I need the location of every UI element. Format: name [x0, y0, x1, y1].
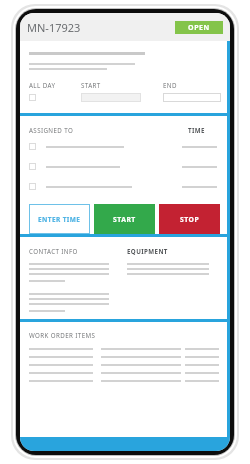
- staticText: START: [81, 81, 101, 89]
- button[interactable]: Bottom navigation: [20, 437, 230, 451]
- staticText: STOP: [180, 215, 200, 224]
- staticText: MN-17923: [27, 20, 81, 35]
- staticText: ALL DAY: [29, 81, 56, 89]
- button[interactable]: STOP: [159, 204, 220, 234]
- staticText: WORK ORDER ITEMS: [29, 331, 96, 339]
- staticText: ENTER TIME: [38, 215, 81, 224]
- button[interactable]: Status OPEN: [175, 21, 223, 34]
- button[interactable]: [29, 143, 217, 150]
- staticText: END: [163, 81, 177, 89]
- staticText: TIME: [188, 126, 205, 134]
- button[interactable]: [29, 183, 217, 190]
- staticText: EQUIPMENT: [127, 247, 168, 255]
- staticText: CONTACT INFO: [29, 247, 78, 255]
- staticText: START: [113, 215, 136, 224]
- button[interactable]: CONTACT INFO: [20, 237, 227, 319]
- button[interactable]: ALL DAY: [20, 41, 227, 113]
- staticText: OPEN: [188, 23, 210, 33]
- button[interactable]: [29, 163, 217, 170]
- button[interactable]: ENTER TIME: [29, 204, 90, 234]
- button[interactable]: START: [94, 204, 155, 234]
- button[interactable]: [81, 93, 141, 102]
- staticText: ASSIGNED TO: [29, 126, 74, 134]
- button[interactable]: WORK ORDER ITEMS: [20, 322, 227, 437]
- button[interactable]: [163, 93, 221, 102]
